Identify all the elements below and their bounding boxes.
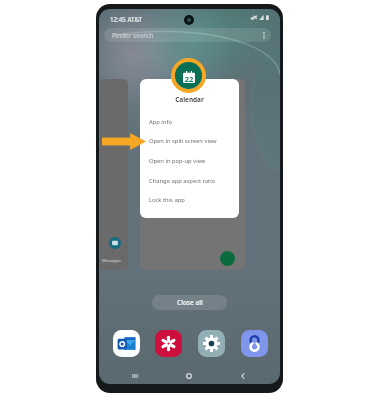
button[interactable]: Home	[183, 370, 195, 382]
button[interactable]: Finder search	[104, 28, 271, 42]
button[interactable]: Lock this app	[140, 191, 239, 209]
staticText: 12:45 AT&T	[110, 15, 143, 23]
other: More options	[263, 32, 265, 39]
staticText: Calendar	[140, 95, 239, 104]
staticText: 22	[183, 74, 195, 84]
button[interactable]: Open in split screen view	[140, 132, 239, 150]
button[interactable]: Outlook	[113, 330, 140, 357]
button[interactable]: Settings	[198, 330, 225, 357]
button[interactable]: Internet	[241, 330, 268, 357]
staticText: Open in pop-up view	[149, 157, 206, 165]
button[interactable]: Recents	[129, 370, 141, 382]
staticText: Close all	[177, 298, 203, 307]
button[interactable]: Back	[237, 370, 249, 382]
button[interactable]: App info	[140, 113, 239, 131]
staticText: Finder search	[112, 31, 154, 40]
staticText: Change app aspect ratio	[149, 177, 216, 185]
staticText: Messages	[102, 258, 121, 263]
button[interactable]: Open in pop-up view	[140, 152, 239, 170]
button[interactable]	[140, 79, 245, 270]
button[interactable]: Close all	[152, 295, 227, 310]
staticText: App info	[149, 118, 172, 126]
staticText: Lock this app	[149, 196, 185, 204]
staticText: Open in split screen view	[149, 137, 217, 145]
button[interactable]: Change app aspect ratio	[140, 172, 239, 190]
button[interactable]: Messages	[100, 79, 128, 270]
button[interactable]: Gallery	[155, 330, 182, 357]
